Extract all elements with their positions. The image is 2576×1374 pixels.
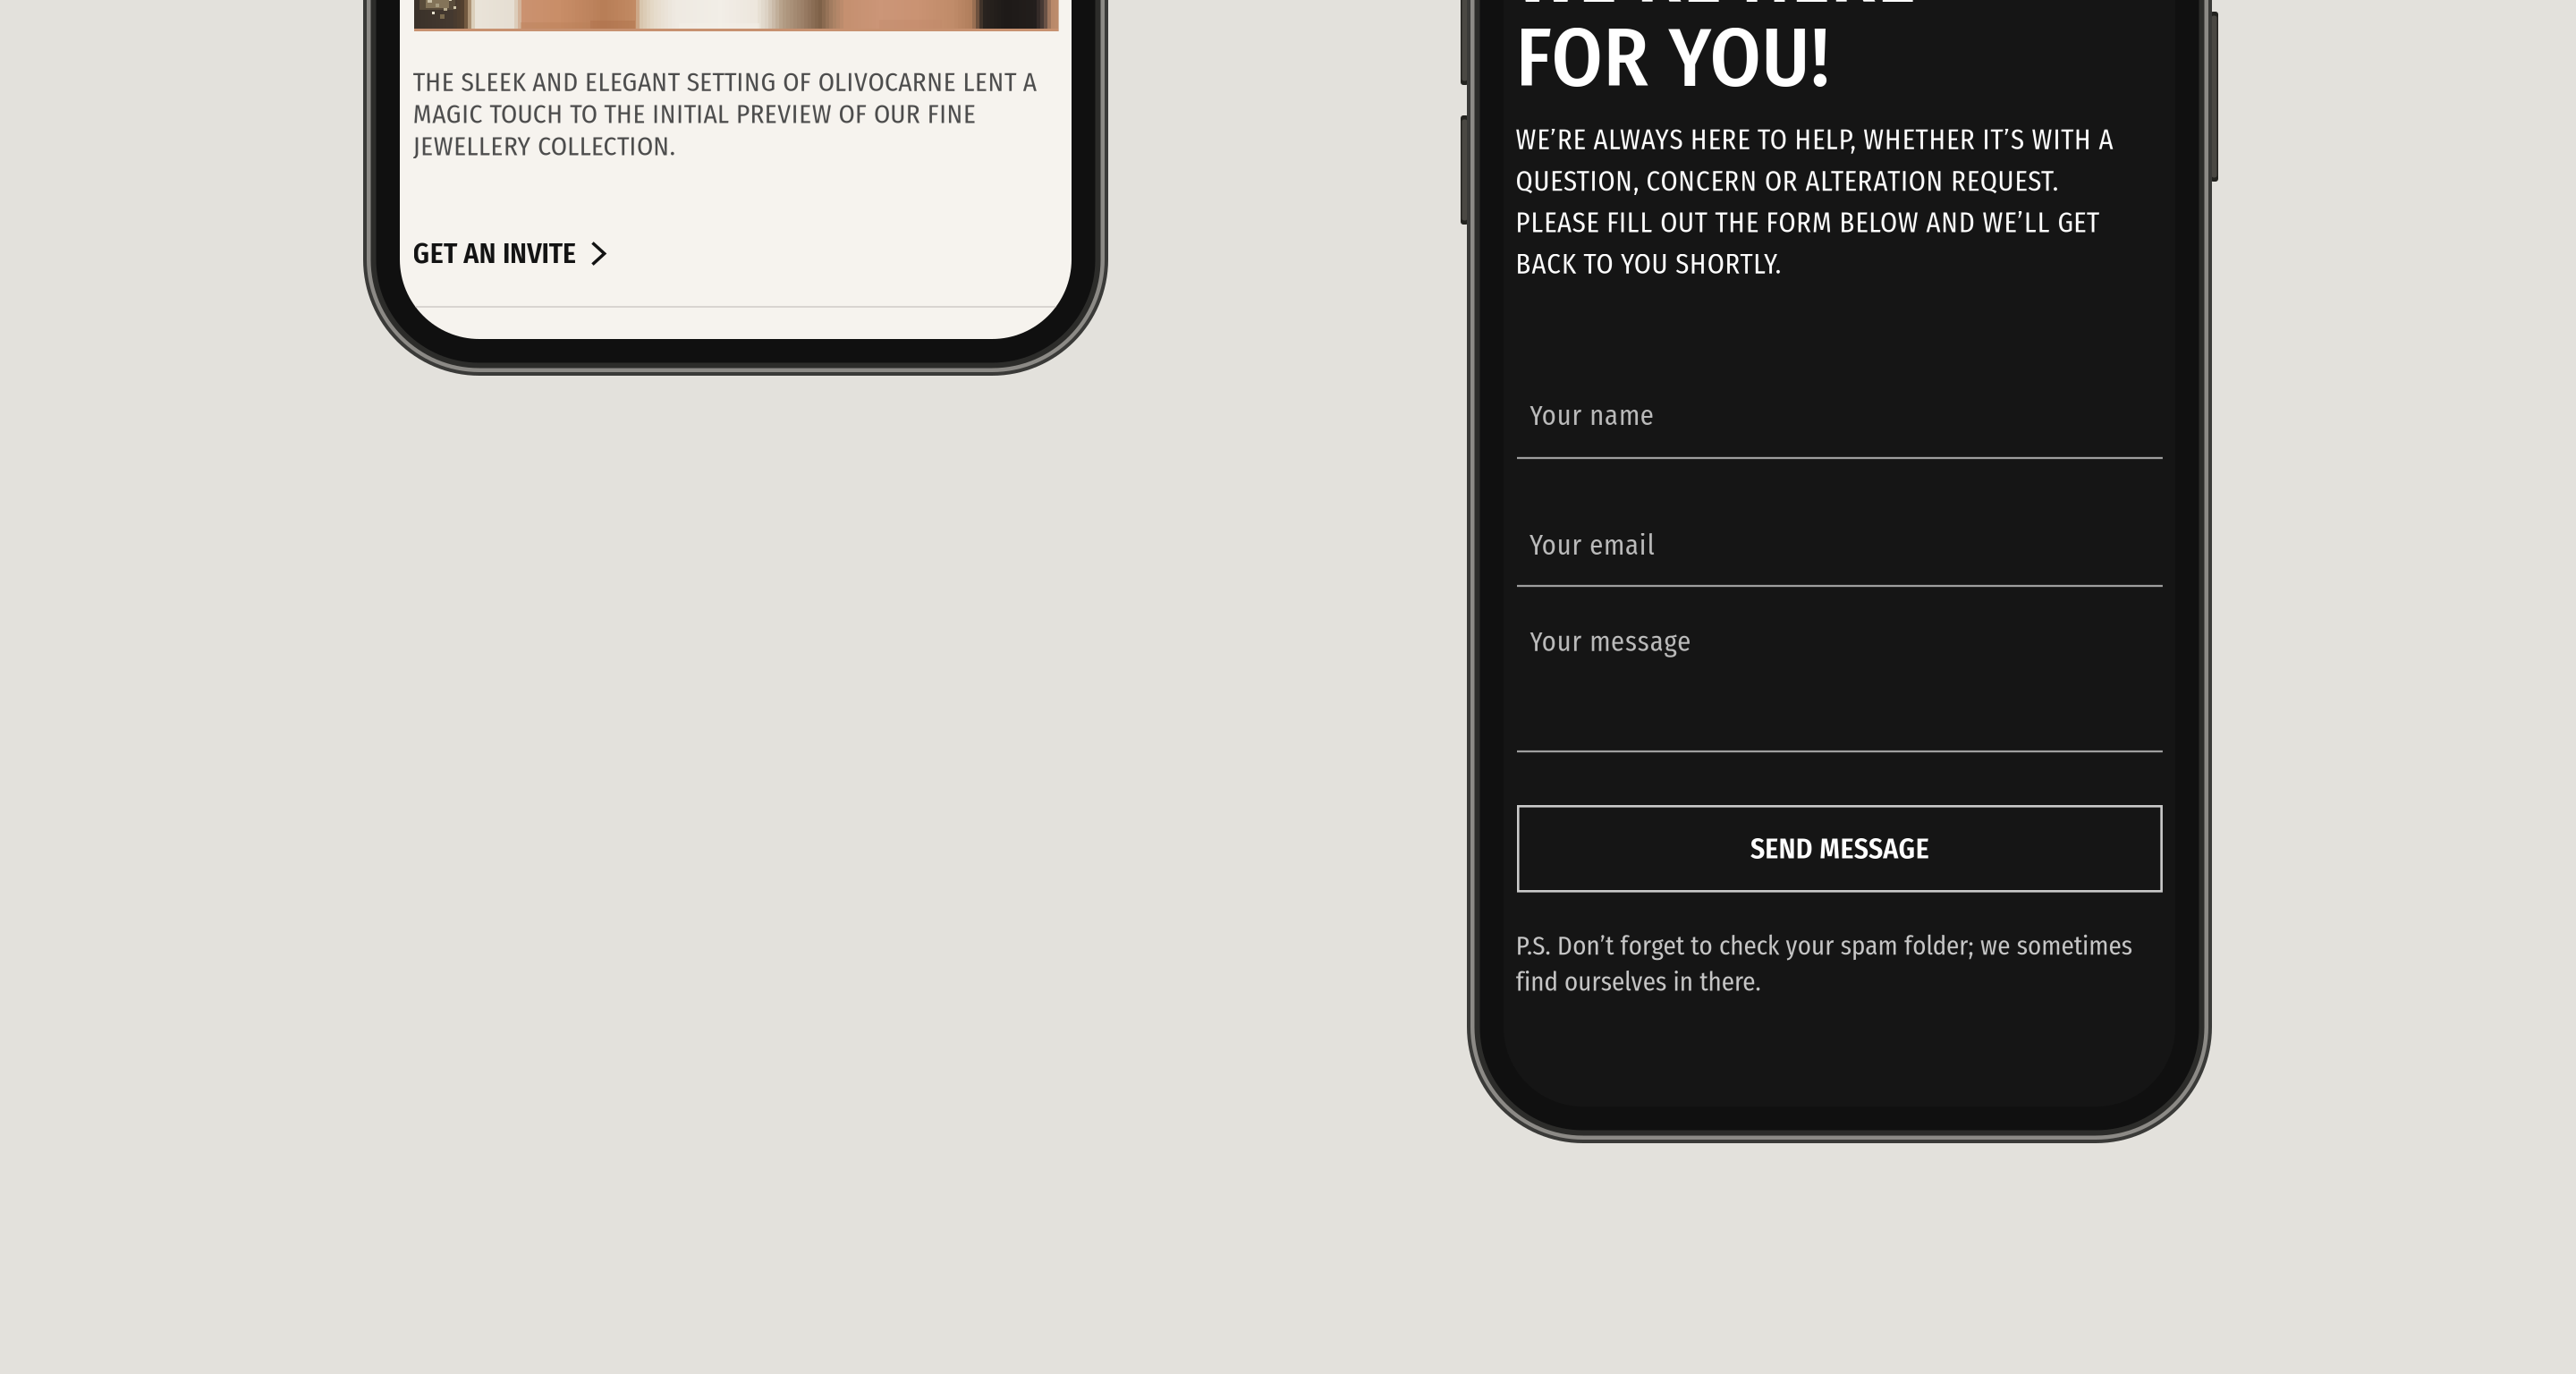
button[interactable]: GET AN INVITE	[413, 237, 620, 267]
staticText: BACK TO YOU SHORTLY.	[1516, 248, 1781, 281]
staticText: Your email	[1529, 529, 1654, 562]
staticText: WE’RE ALWAYS HERE TO HELP, WHETHER IT’S …	[1516, 124, 2113, 156]
staticText: MAGIC TOUCH TO THE INITIAL PREVIEW OF OU…	[413, 99, 976, 130]
staticText: find ourselves in there.	[1516, 966, 1761, 997]
staticText: Your name	[1529, 399, 1654, 432]
staticText: QUESTION, CONCERN OR ALTERATION REQUEST.	[1516, 165, 2058, 198]
staticText: JEWELLERY COLLECTION.	[413, 131, 675, 162]
staticText: SEND MESSAGE	[1751, 832, 1929, 866]
staticText: FOR YOU!	[1516, 10, 1830, 107]
staticText: WE’RE HERE	[1516, 0, 1915, 24]
button[interactable]: Your email	[1517, 504, 2163, 589]
staticText: THE SLEEK AND ELEGANT SETTING OF OLIVOCA…	[413, 67, 1037, 98]
staticText: PLEASE FILL OUT THE FORM BELOW AND WE’LL…	[1516, 207, 2099, 239]
staticText: Your message	[1529, 626, 1691, 658]
button[interactable]: SEND MESSAGE	[1518, 806, 2162, 891]
button[interactable]: Your message	[1517, 600, 2163, 755]
staticText: P.S. Don’t forget to check your spam fol…	[1516, 931, 2132, 962]
button[interactable]: Your name	[1517, 376, 2163, 462]
staticText: GET AN INVITE	[413, 237, 576, 271]
